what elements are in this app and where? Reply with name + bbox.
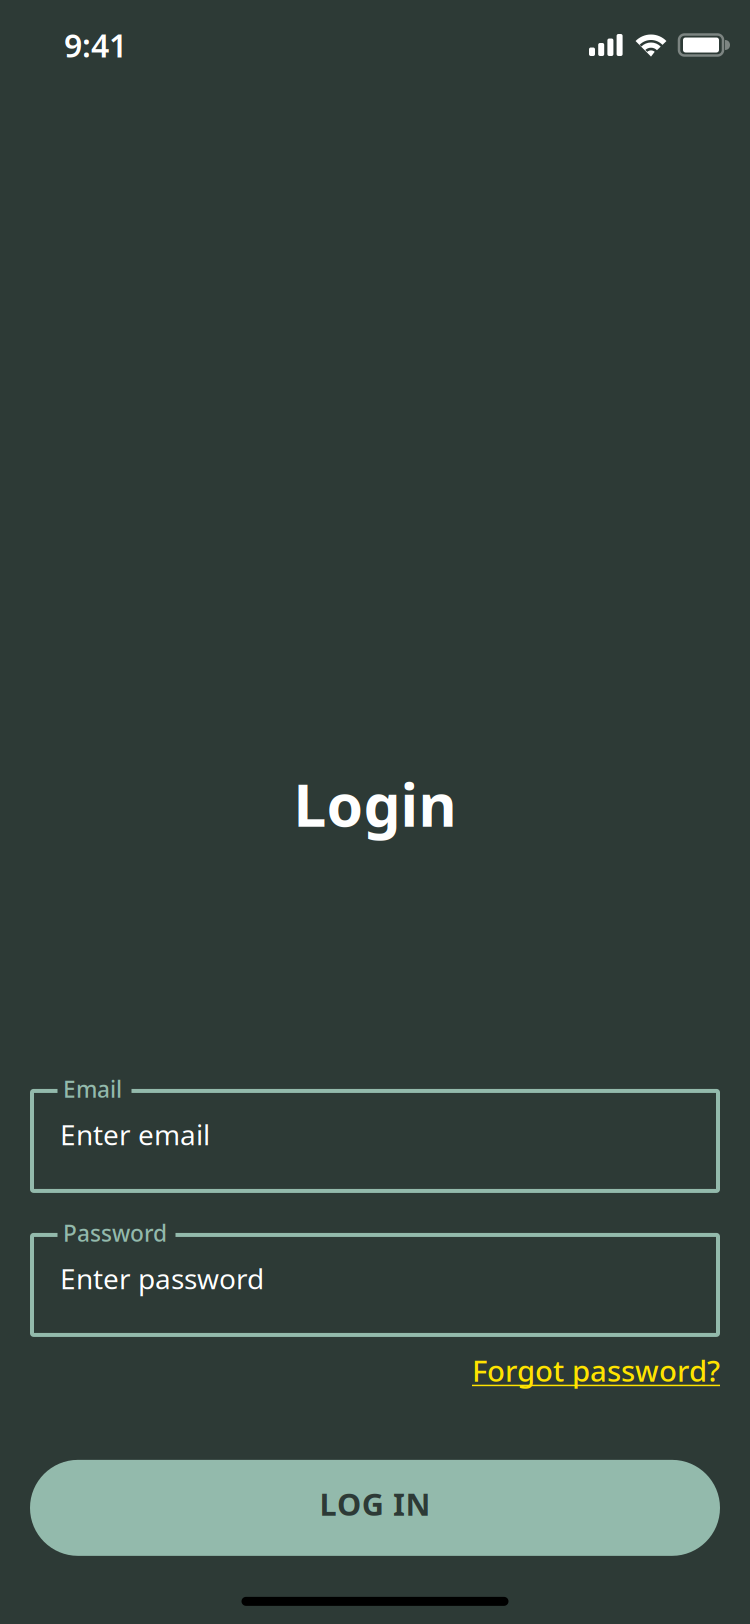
button[interactable]: Email xyxy=(30,1089,720,1193)
staticText: Email xyxy=(63,1074,122,1104)
staticText: Password xyxy=(63,1218,167,1248)
staticText: 9:41 xyxy=(64,24,127,66)
button[interactable]: Forgot password? xyxy=(472,1351,720,1390)
staticText: Enter email xyxy=(60,1116,210,1153)
staticText: Login xyxy=(293,765,456,843)
button[interactable]: Password xyxy=(30,1233,720,1337)
staticText: LOG IN xyxy=(319,1483,430,1524)
staticText: Enter password xyxy=(60,1260,264,1297)
button[interactable]: LOG IN xyxy=(30,1460,720,1556)
staticText: Forgot password? xyxy=(472,1351,720,1390)
